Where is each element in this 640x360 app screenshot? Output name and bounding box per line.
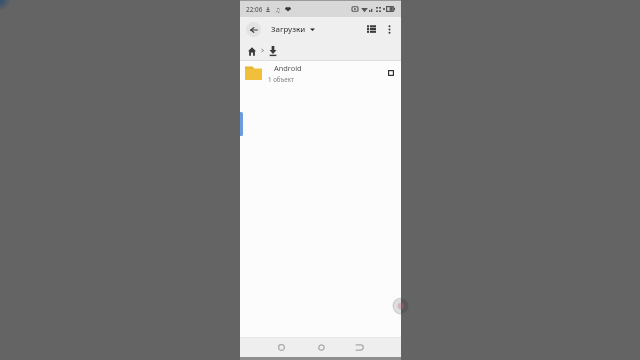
button[interactable]: Back xyxy=(246,22,261,37)
button[interactable]: Recent apps xyxy=(270,338,292,357)
staticText: 22:06 xyxy=(246,5,263,14)
staticText: 1 объект xyxy=(268,75,294,83)
button[interactable]: Downloads folder xyxy=(267,45,279,57)
button[interactable]: Android xyxy=(240,61,401,84)
button[interactable]: Загрузки xyxy=(271,24,315,35)
staticText: Загрузки xyxy=(271,24,306,35)
staticText: Android xyxy=(274,63,302,73)
button[interactable]: Back xyxy=(349,338,371,357)
button[interactable]: Select folder xyxy=(384,66,398,80)
button[interactable]: Home xyxy=(310,338,332,357)
staticText: ♫ xyxy=(275,6,281,13)
button[interactable]: Home folder xyxy=(246,45,258,57)
other: Screen recorder xyxy=(393,298,409,314)
button[interactable]: More options xyxy=(381,21,397,37)
button[interactable]: List view xyxy=(362,20,380,38)
